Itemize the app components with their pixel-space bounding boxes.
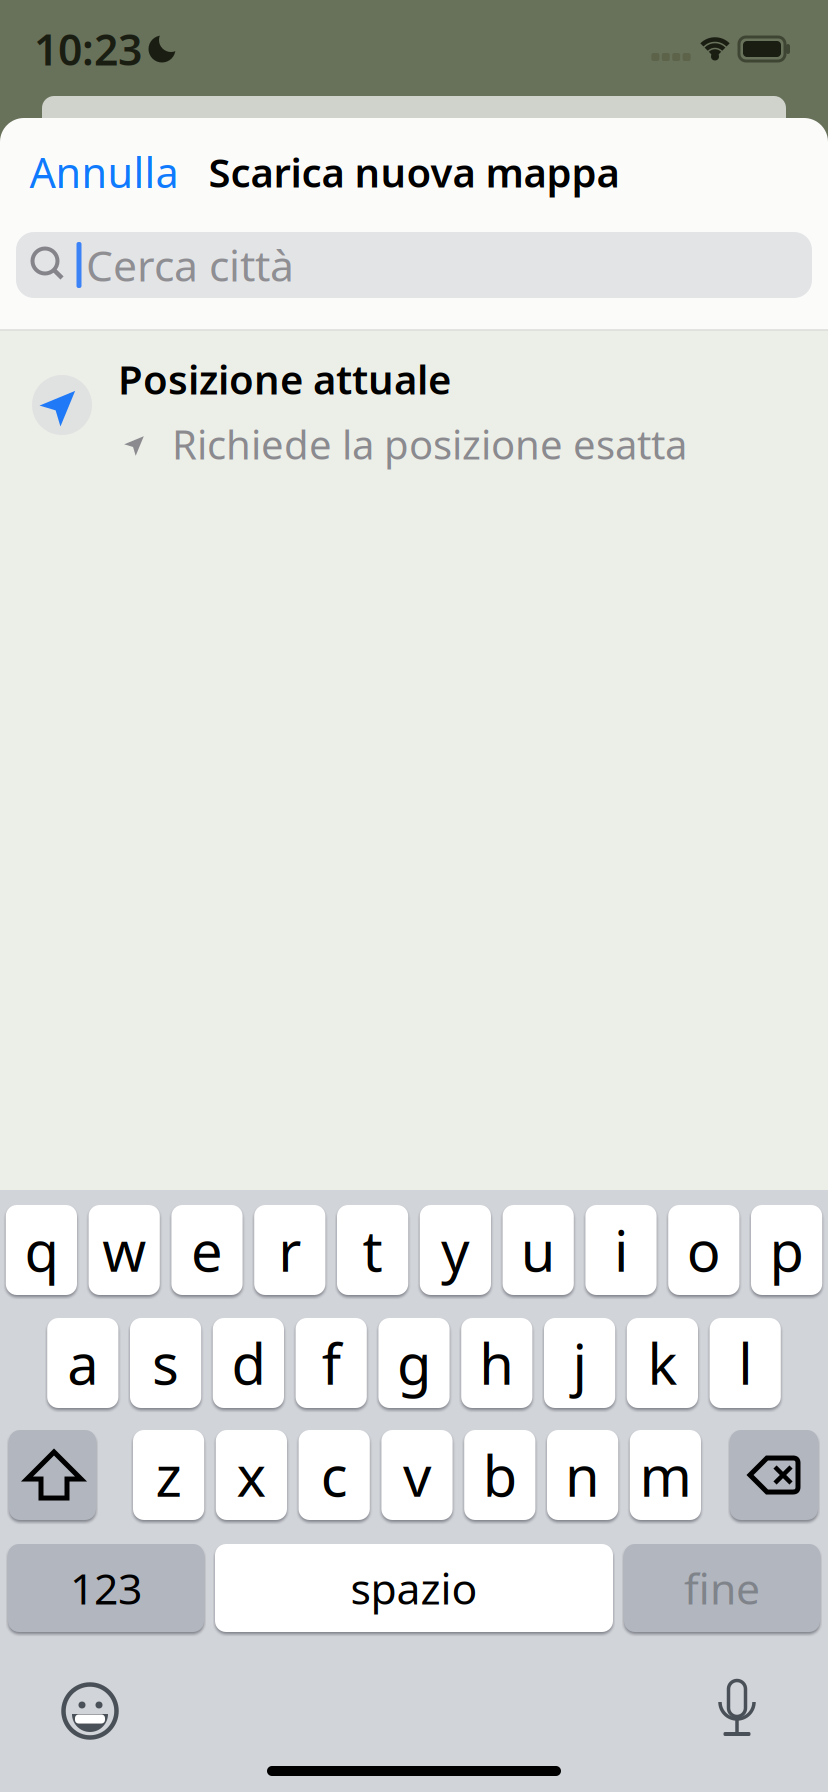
staticText: z: [156, 1438, 182, 1512]
staticText: q: [24, 1213, 58, 1287]
button[interactable]: Dettatura: [697, 1669, 777, 1749]
button[interactable]: z: [133, 1430, 204, 1520]
button[interactable]: p: [751, 1205, 822, 1295]
button[interactable]: y: [420, 1205, 491, 1295]
staticText: t: [363, 1213, 383, 1287]
staticText: 123: [70, 1560, 142, 1616]
staticText: l: [738, 1326, 752, 1400]
staticText: d: [231, 1326, 265, 1400]
staticText: Annulla: [29, 145, 178, 199]
button[interactable]: u: [503, 1205, 574, 1295]
button[interactable]: spazio: [215, 1544, 613, 1632]
staticText: n: [565, 1438, 600, 1512]
staticText: Richiede la posizione esatta: [172, 417, 687, 470]
button[interactable]: k: [627, 1318, 698, 1408]
staticText: a: [67, 1326, 98, 1400]
staticText: e: [191, 1213, 223, 1287]
button[interactable]: Emoji: [50, 1671, 130, 1751]
button[interactable]: e: [171, 1205, 243, 1295]
button[interactable]: d: [213, 1318, 284, 1408]
button[interactable]: n: [547, 1430, 618, 1520]
staticText: Posizione attuale: [118, 352, 451, 405]
button[interactable]: g: [378, 1318, 450, 1408]
button[interactable]: Delete: [730, 1430, 818, 1520]
button[interactable]: s: [130, 1318, 201, 1408]
staticText: u: [521, 1213, 556, 1287]
staticText: spazio: [350, 1560, 477, 1616]
staticText: k: [647, 1326, 677, 1400]
button[interactable]: v: [381, 1430, 453, 1520]
staticText: f: [322, 1326, 341, 1400]
staticText: Scarica nuova mappa: [208, 145, 619, 198]
button[interactable]: h: [461, 1318, 532, 1408]
button[interactable]: Posizione attuale: [0, 339, 828, 479]
button[interactable]: r: [254, 1205, 325, 1295]
button[interactable]: q: [6, 1205, 77, 1295]
staticText: r: [278, 1213, 301, 1287]
staticText: g: [397, 1326, 431, 1400]
staticText: y: [441, 1213, 470, 1287]
button[interactable]: m: [630, 1430, 701, 1520]
staticText: w: [102, 1213, 146, 1287]
staticText: p: [770, 1213, 804, 1287]
staticText: 10:23: [34, 21, 142, 77]
button[interactable]: c: [299, 1430, 370, 1520]
staticText: o: [687, 1213, 721, 1287]
button[interactable]: Annulla: [29, 145, 178, 199]
button[interactable]: b: [464, 1430, 535, 1520]
button[interactable]: j: [544, 1318, 615, 1408]
staticText: b: [483, 1438, 517, 1512]
button[interactable]: t: [337, 1205, 408, 1295]
button[interactable]: x: [216, 1430, 287, 1520]
button[interactable]: w: [89, 1205, 160, 1295]
staticText: c: [321, 1438, 348, 1512]
button[interactable]: Cerca città: [16, 232, 812, 298]
button[interactable]: i: [585, 1205, 657, 1295]
staticText: m: [639, 1438, 691, 1512]
staticText: v: [403, 1438, 431, 1512]
button[interactable]: a: [47, 1318, 118, 1408]
staticText: i: [614, 1213, 628, 1287]
button[interactable]: fine: [624, 1544, 820, 1632]
button[interactable]: f: [296, 1318, 367, 1408]
staticText: fine: [684, 1560, 760, 1616]
button[interactable]: Shift: [9, 1430, 96, 1520]
staticText: Cerca città: [86, 237, 294, 293]
staticText: h: [479, 1326, 514, 1400]
staticText: s: [152, 1326, 179, 1400]
staticText: x: [236, 1438, 266, 1512]
button[interactable]: o: [668, 1205, 739, 1295]
button[interactable]: l: [710, 1318, 781, 1408]
button[interactable]: 123: [8, 1544, 204, 1632]
staticText: j: [573, 1326, 587, 1400]
